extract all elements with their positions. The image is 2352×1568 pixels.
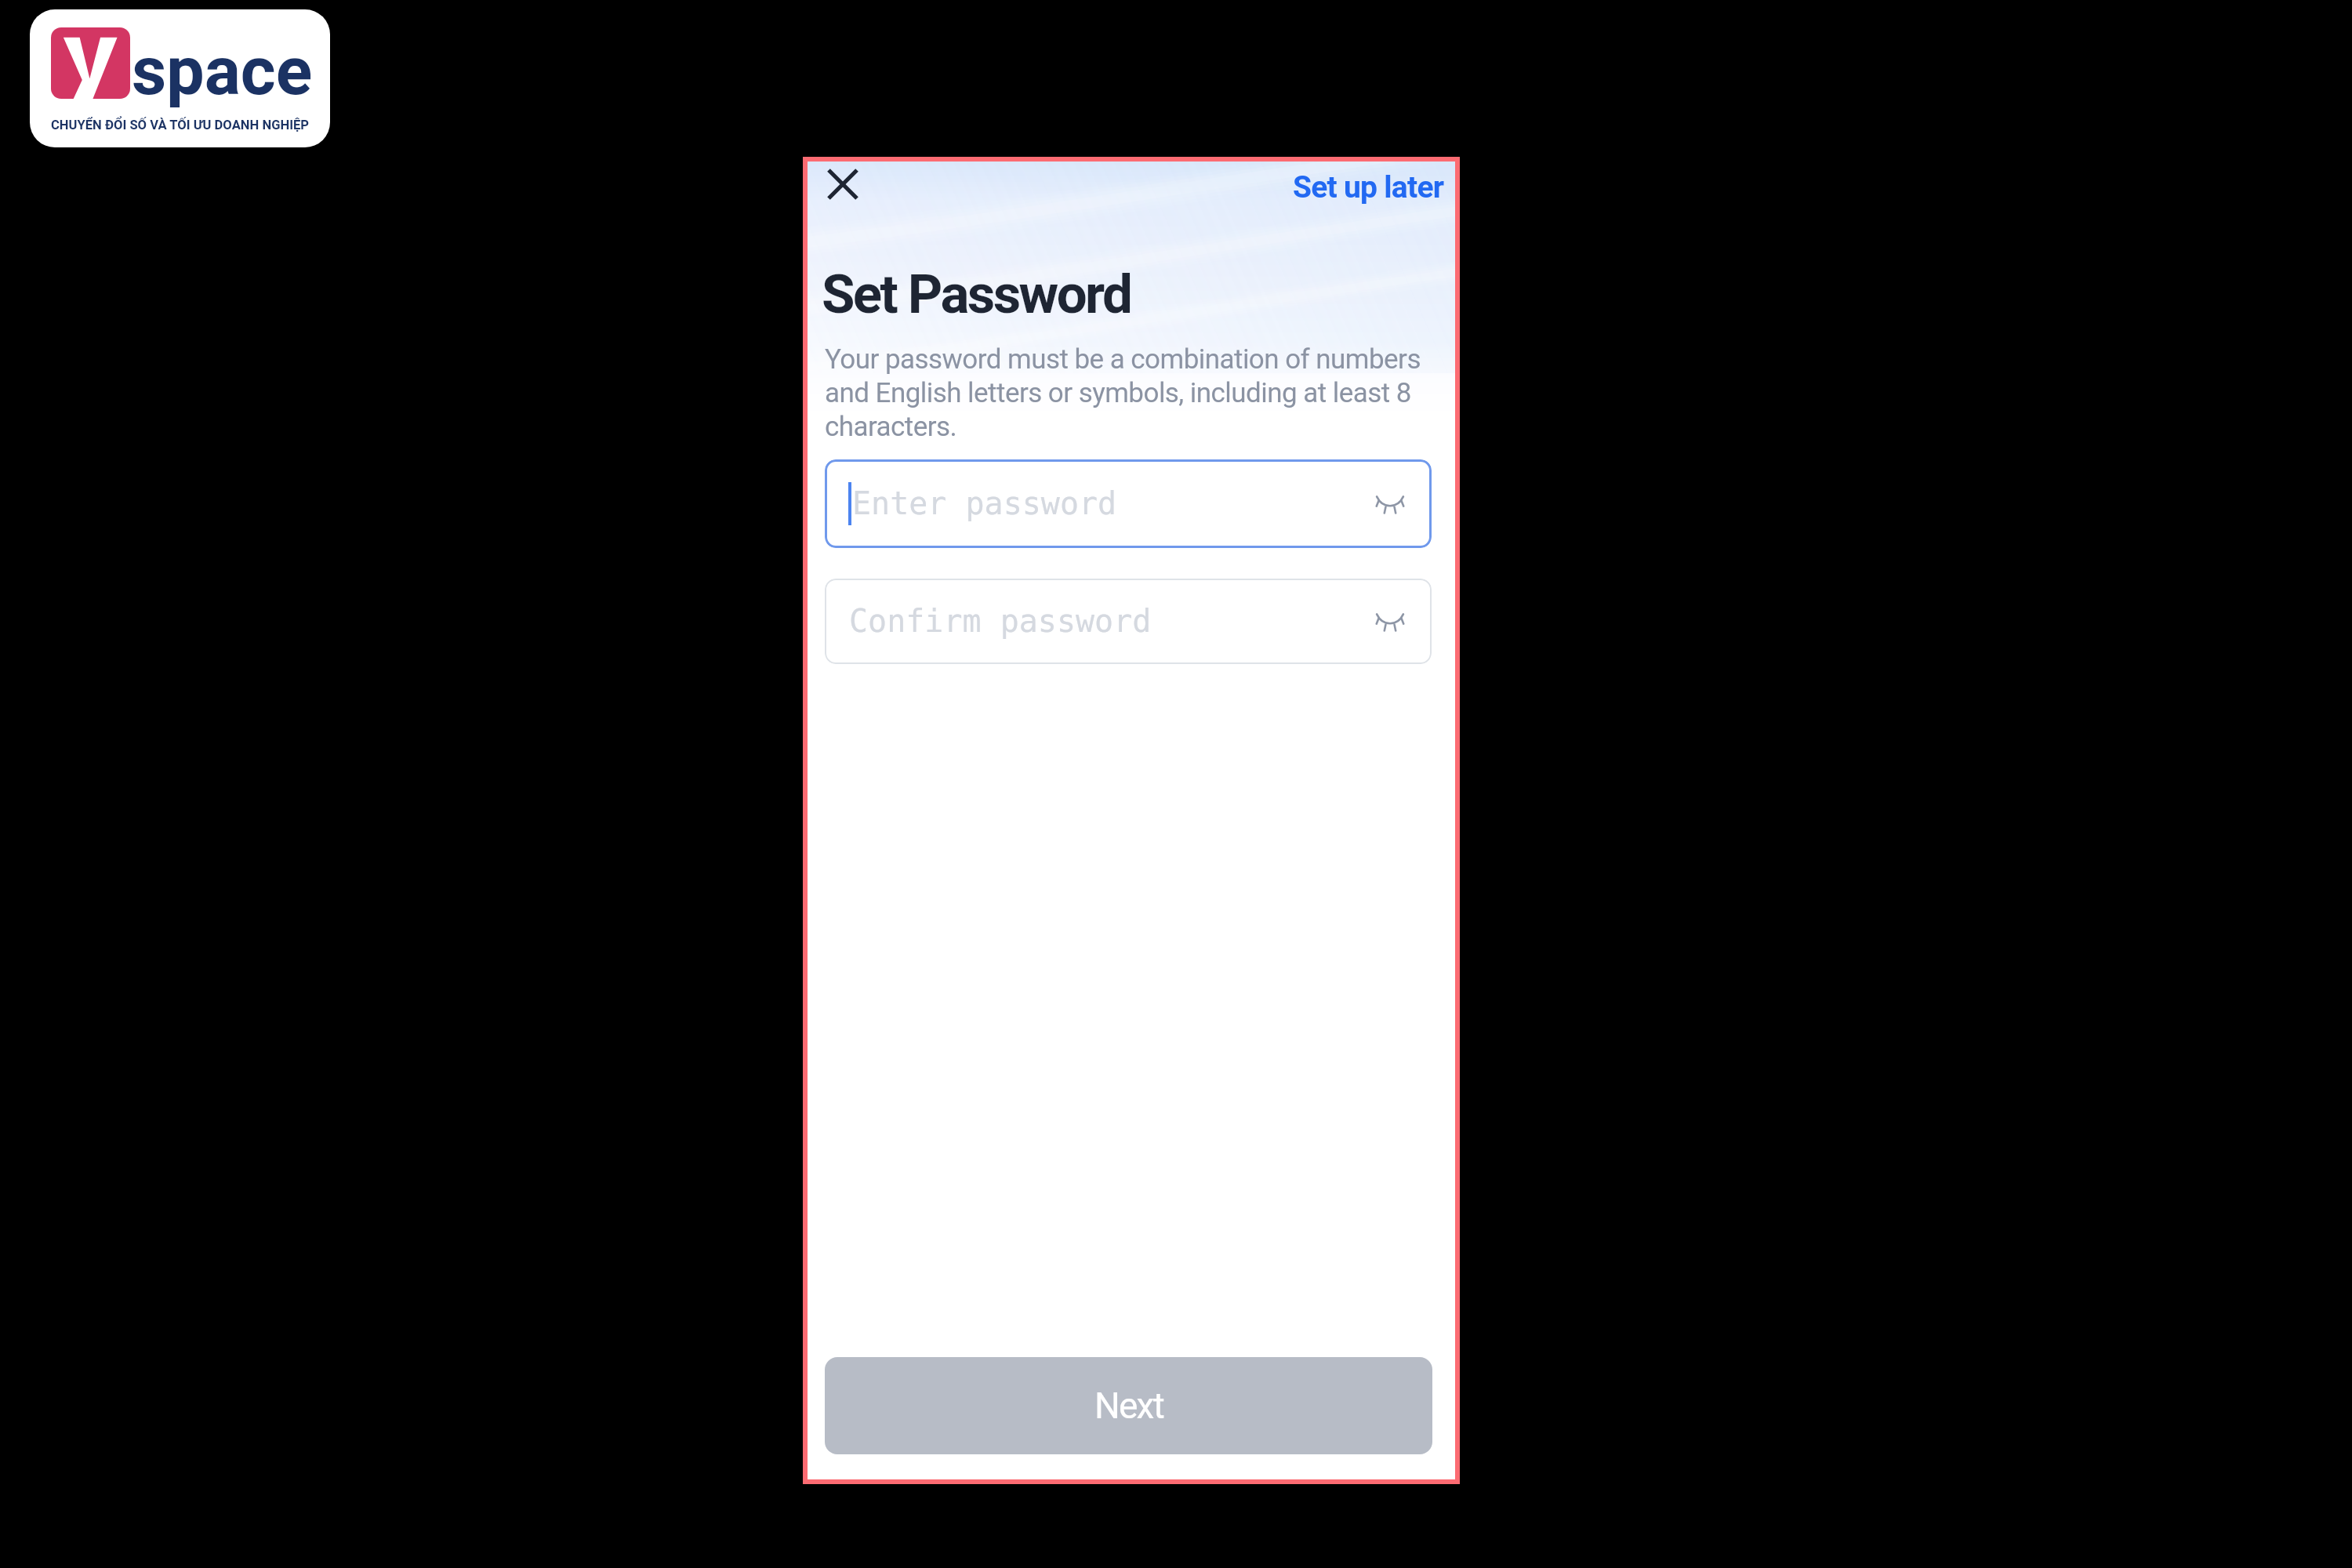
button[interactable]: Set up later — [1277, 162, 1455, 220]
button[interactable]: Close — [811, 162, 875, 216]
button[interactable]: Confirm password — [825, 579, 1432, 664]
staticText: Set up later — [1293, 169, 1444, 205]
staticText: Set Password — [822, 263, 1131, 326]
staticText: Next — [1094, 1385, 1163, 1427]
staticText: space — [132, 31, 313, 111]
staticText: Confirm password — [849, 603, 1152, 640]
staticText: Enter password — [852, 485, 1117, 522]
button[interactable]: Enter password — [825, 459, 1432, 548]
button[interactable]: Next — [825, 1357, 1432, 1454]
button[interactable]: Show password — [1370, 484, 1410, 524]
other: Yspace logo — [30, 9, 330, 147]
staticText: CHUYỂN ĐỔI SỐ VÀ TỐI ƯU DOANH NGHIỆP — [45, 118, 314, 132]
button[interactable]: Show password — [1370, 601, 1410, 642]
staticText: Your password must be a combination of n… — [825, 343, 1432, 443]
